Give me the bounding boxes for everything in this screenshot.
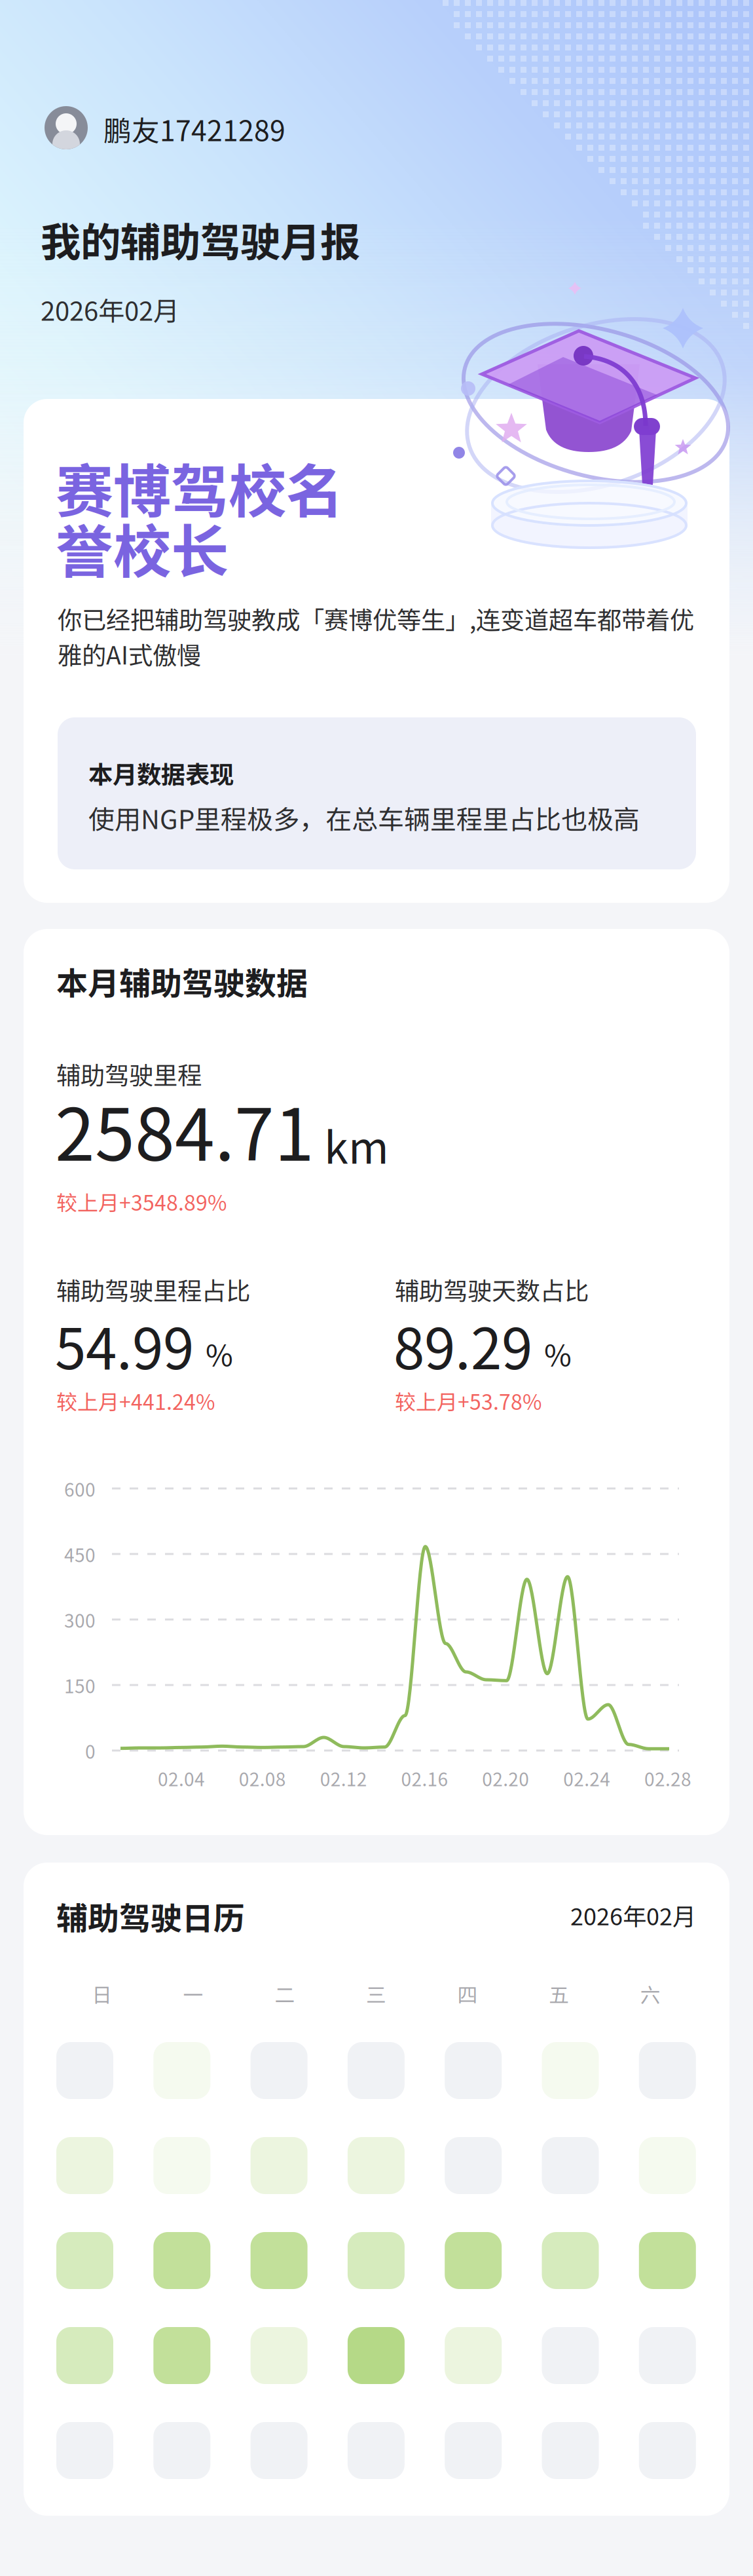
staticText: 二	[275, 1979, 295, 2008]
staticText: 辅助驾驶日历	[56, 1893, 245, 1939]
staticText: 五	[549, 1979, 569, 2008]
staticText: %	[544, 1332, 572, 1375]
staticText: 六	[640, 1979, 660, 2008]
staticText: 辅助驾驶里程	[56, 1056, 202, 1092]
staticText: 0	[85, 1737, 96, 1764]
staticText: 150	[64, 1672, 96, 1698]
staticText: 02.28	[644, 1765, 692, 1791]
staticText: 600	[64, 1475, 96, 1502]
staticText: 02.24	[563, 1765, 610, 1791]
staticText: 02.08	[239, 1765, 286, 1791]
staticText: 02.04	[158, 1765, 205, 1791]
staticText: 较上月+3548.89%	[56, 1186, 227, 1217]
staticText: 02.16	[401, 1765, 448, 1791]
staticText: 我的辅助驾驶月报	[41, 210, 360, 268]
staticText: 2026年02月	[570, 1898, 696, 1932]
staticText: 较上月+441.24%	[56, 1386, 215, 1416]
staticText: 一	[183, 1979, 204, 2008]
staticText: 誉校长	[56, 506, 229, 589]
staticText: 日	[92, 1979, 112, 2008]
staticText: 02.20	[482, 1765, 529, 1791]
staticText: 54.99	[55, 1304, 194, 1385]
staticText: 89.29	[394, 1304, 532, 1385]
staticText: 300	[64, 1606, 96, 1633]
staticText: 辅助驾驶天数占比	[395, 1272, 589, 1307]
staticText: 450	[64, 1541, 96, 1567]
staticText: 02.12	[320, 1765, 367, 1791]
staticText: 三	[366, 1979, 386, 2008]
staticText: 辅助驾驶里程占比	[56, 1272, 250, 1307]
staticText: 使用NGP里程极多，在总车辆里程里占比也极高	[88, 799, 640, 837]
staticText: %	[206, 1332, 233, 1375]
button[interactable]: 鹏友17421289	[0, 0, 393, 39]
staticText: 本月数据表现	[88, 755, 234, 791]
staticText: 四	[457, 1979, 478, 2008]
staticText: 2584.71	[55, 1078, 314, 1181]
staticText: 本月辅助驾驶数据	[56, 958, 308, 1004]
staticText: 2026年02月	[41, 290, 179, 328]
staticText: 赛博驾校名	[56, 445, 344, 529]
staticText: 你已经把辅助驾驶教成「赛博优等生」,连变道超车都带着优雅的AI式傲慢	[58, 601, 694, 672]
staticText: 较上月+53.78%	[395, 1386, 542, 1416]
staticText: 鹏友17421289	[103, 109, 285, 149]
staticText: km	[324, 1113, 389, 1176]
